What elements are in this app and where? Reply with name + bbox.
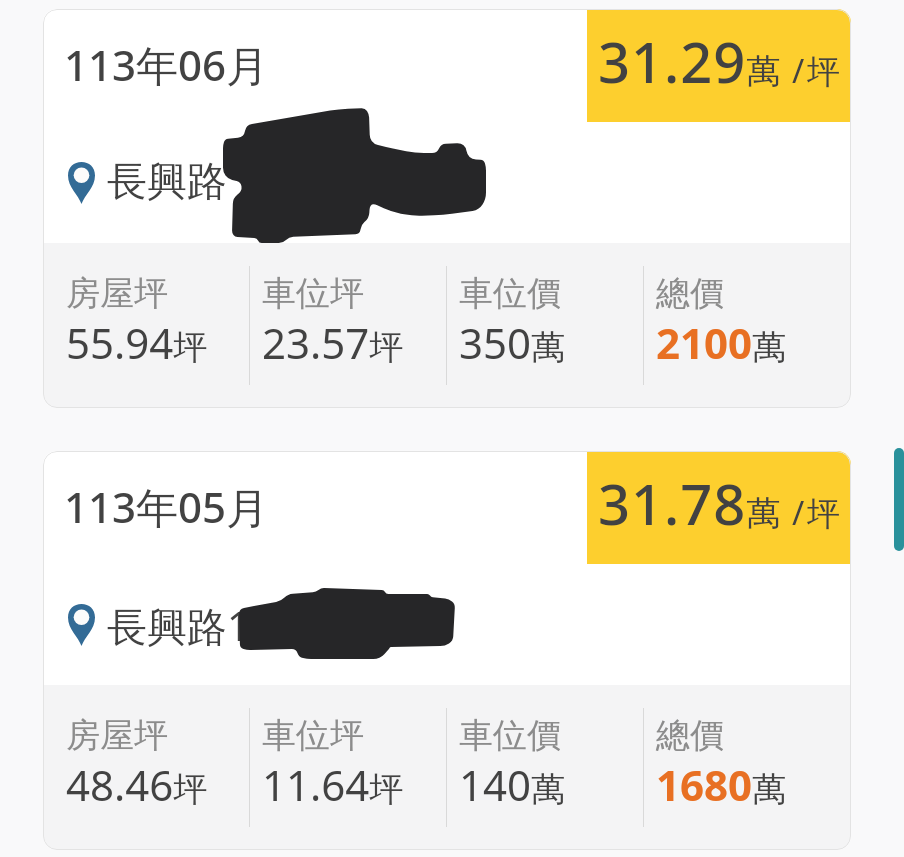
staticText: 140萬 xyxy=(459,756,566,813)
staticText: 350萬 xyxy=(459,314,566,371)
staticText: 11.64坪 xyxy=(262,756,404,813)
staticText: 長興路1 xyxy=(107,598,250,653)
staticText: 房屋坪 xyxy=(66,714,168,757)
button[interactable]: 31.78萬 /坪 xyxy=(43,451,851,850)
staticText: 2100萬 xyxy=(656,314,787,371)
staticText: 55.94坪 xyxy=(66,314,208,371)
staticText: 車位價 xyxy=(459,272,561,315)
staticText: 長興路 xyxy=(107,156,227,206)
staticText: 總價 xyxy=(656,272,724,315)
staticText: 48.46坪 xyxy=(66,756,208,813)
staticText: 1680萬 xyxy=(656,756,787,813)
staticText: 113年05月 xyxy=(64,478,269,535)
staticText: 總價 xyxy=(656,714,724,757)
staticText: 車位坪 xyxy=(262,272,364,315)
staticText: 車位價 xyxy=(459,714,561,757)
staticText: 房屋坪 xyxy=(66,272,168,315)
staticText: 車位坪 xyxy=(262,714,364,757)
staticText: 31.29萬 /坪 xyxy=(598,23,841,99)
staticText: 31.78萬 /坪 xyxy=(598,465,841,541)
button[interactable]: 31.29萬 /坪 xyxy=(43,9,851,408)
staticText: 23.57坪 xyxy=(262,314,404,371)
staticText: 113年06月 xyxy=(64,36,269,93)
